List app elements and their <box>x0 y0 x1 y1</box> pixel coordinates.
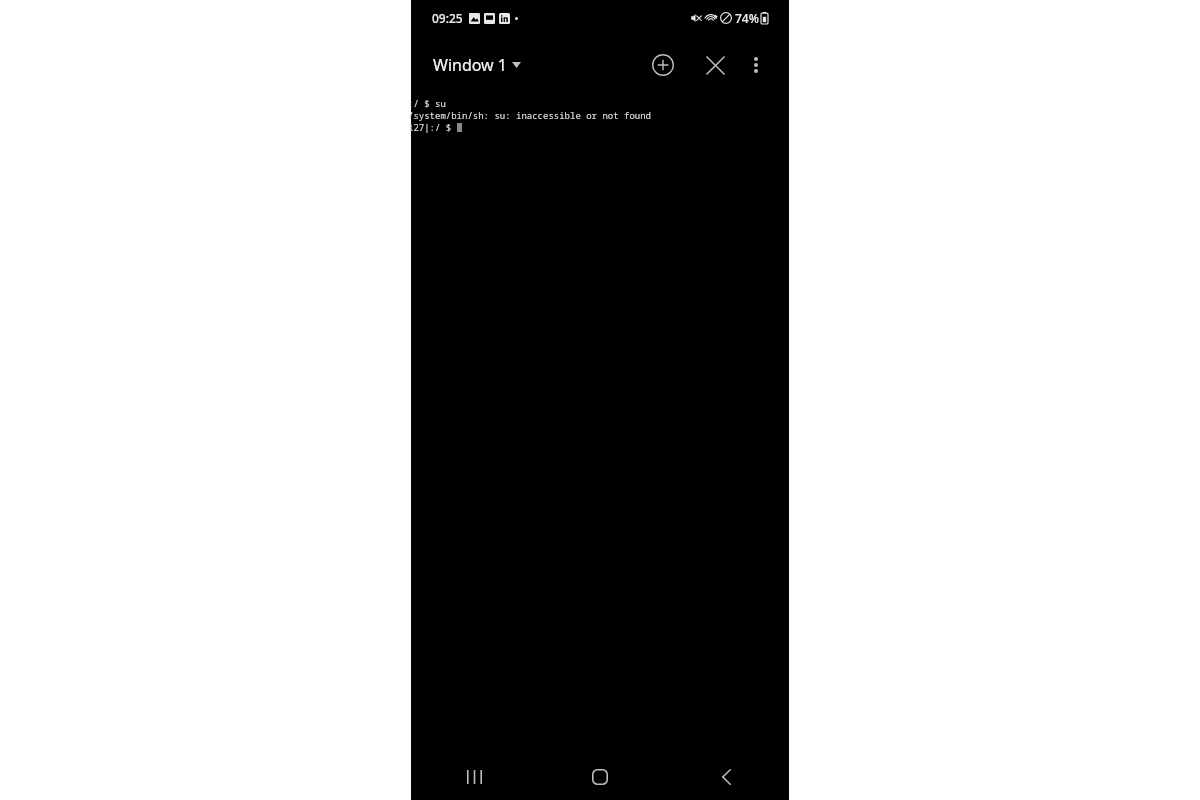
button[interactable]: Window 1 <box>427 48 527 82</box>
button[interactable]: More options <box>737 46 775 84</box>
button[interactable]: Home <box>537 754 663 800</box>
button[interactable]: Close window <box>695 45 735 85</box>
staticText: :/ $ su <box>408 97 446 109</box>
button[interactable]: Back <box>663 754 789 800</box>
staticText: 74% <box>735 10 759 26</box>
button[interactable]: :/ $ su <box>411 94 789 754</box>
button[interactable]: New window <box>643 45 683 85</box>
staticText: /system/bin/sh: su: inaccessible or not … <box>408 109 652 121</box>
button[interactable]: Recent apps <box>411 754 537 800</box>
staticText: 127|:/ $ <box>408 121 457 133</box>
staticText: 09:25 <box>432 10 463 26</box>
staticText: Window 1 <box>433 54 507 76</box>
